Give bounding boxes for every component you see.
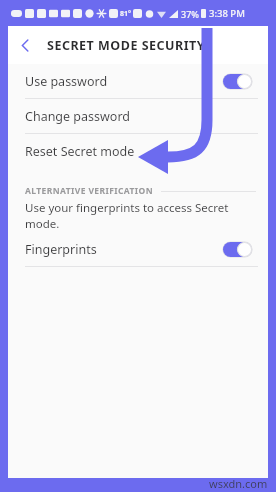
staticText: Use your fingerprints to access Secret m… [25, 200, 256, 232]
button[interactable]: Fingerprints [8, 232, 268, 266]
staticText: Use password [25, 73, 223, 90]
staticText: ALTERNATIVE VERIFICATION [25, 185, 153, 197]
button[interactable]: Toggle [223, 74, 252, 89]
staticText: wsxdn.com [209, 476, 268, 491]
staticText: Reset Secret mode [25, 143, 252, 160]
staticText: 81° [120, 9, 131, 19]
button[interactable]: Toggle [223, 242, 252, 257]
staticText: Fingerprints [25, 241, 223, 258]
staticText: SECRET MODE SECURITY [47, 37, 206, 54]
button[interactable]: Back [8, 28, 42, 62]
button[interactable]: Reset Secret mode [8, 134, 268, 168]
button[interactable]: Change password [8, 99, 268, 133]
button[interactable]: Use password [8, 64, 268, 98]
staticText: 37% [181, 8, 199, 20]
staticText: 3:38 PM [209, 7, 245, 20]
staticText: Change password [25, 108, 252, 125]
